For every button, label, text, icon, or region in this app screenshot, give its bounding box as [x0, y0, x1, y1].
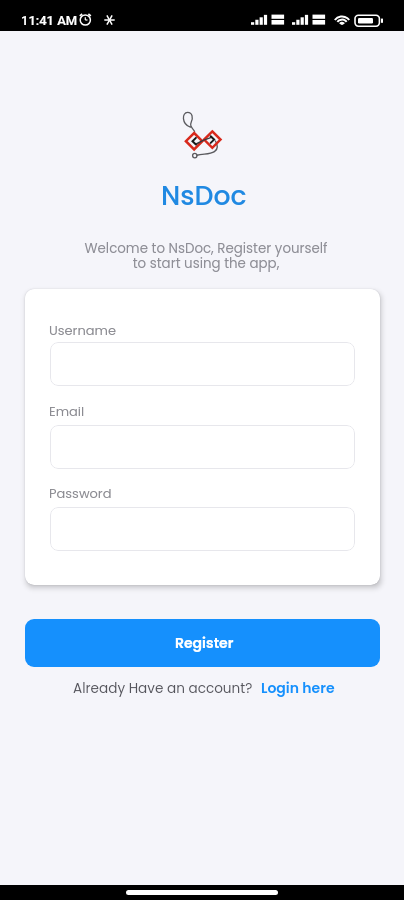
button[interactable]: Username input field [50, 342, 355, 386]
button[interactable]: Email input field [50, 425, 355, 469]
staticText: Login here [261, 678, 335, 698]
button[interactable]: Password input field [50, 507, 355, 551]
staticText: 11:41 AM [21, 13, 78, 28]
button[interactable]: Login here [261, 678, 335, 698]
staticText: Email [49, 402, 85, 420]
button[interactable]: Register [25, 619, 380, 667]
staticText: Welcome to NsDoc, Register yourself to s… [84, 239, 328, 273]
staticText: NsDoc [161, 177, 247, 214]
staticText: Password [49, 484, 112, 502]
staticText: Already Have an account? [73, 679, 253, 698]
staticText: Username [49, 321, 117, 339]
staticText: Register [175, 633, 234, 653]
